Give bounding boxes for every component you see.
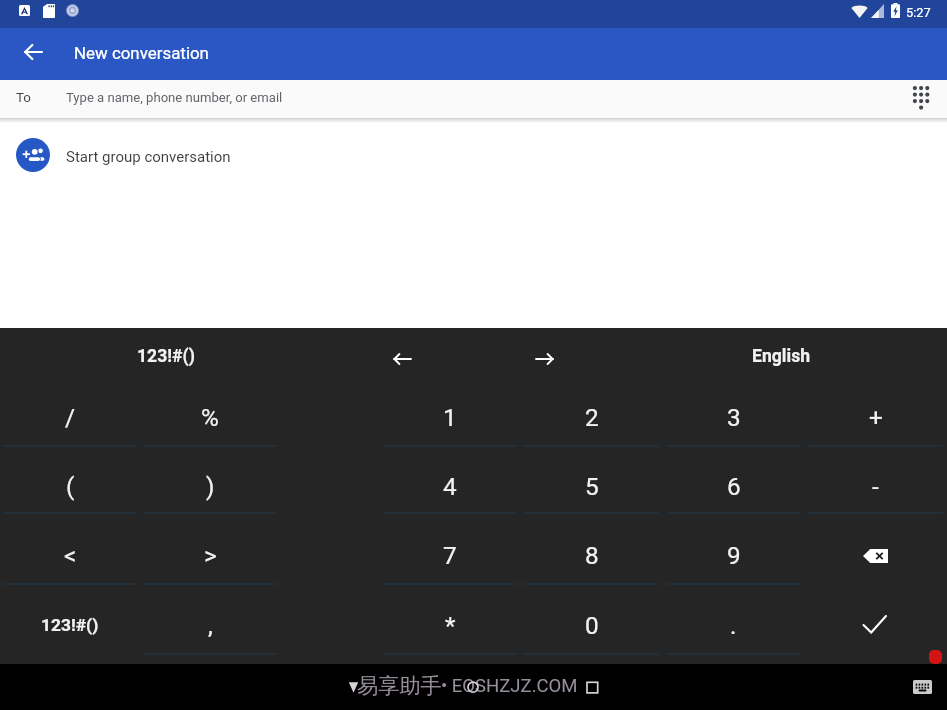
staticText: 8 (585, 541, 599, 569)
button[interactable]: 9 (663, 514, 804, 585)
button[interactable]: % (140, 377, 280, 447)
staticText: 0 (585, 611, 599, 639)
button[interactable]: Switch keyboard (913, 680, 932, 694)
staticText: 123!#() (137, 346, 195, 367)
button[interactable]: 0 (520, 585, 663, 655)
button[interactable]: 3 (663, 377, 804, 447)
button[interactable]: + (804, 377, 947, 447)
staticText: - (872, 472, 879, 500)
button[interactable]: , (140, 585, 280, 655)
button[interactable]: 4 (380, 447, 520, 514)
button[interactable]: * (380, 585, 520, 655)
button[interactable]: 123!#() (0, 328, 280, 375)
staticText: 6 (727, 472, 741, 500)
button[interactable]: Done (804, 585, 947, 655)
button[interactable]: . (663, 585, 804, 655)
staticText: 2 (585, 403, 599, 431)
staticText: 1 (443, 403, 457, 431)
staticText: Start group conversation (66, 148, 231, 166)
staticText: 123!#() (41, 615, 99, 635)
button[interactable]: < (0, 514, 140, 585)
staticText: + (869, 403, 883, 431)
button[interactable]: Delete (804, 514, 947, 585)
staticText: * (445, 611, 456, 639)
other: Done (863, 616, 888, 637)
button[interactable]: 5 (520, 447, 663, 514)
staticText: 3 (727, 403, 741, 431)
button[interactable]: English (707, 328, 855, 375)
staticText: 5:27 (906, 5, 931, 20)
button[interactable]: Move cursor right (526, 341, 562, 377)
button[interactable]: / (0, 377, 140, 447)
other: Delete (863, 549, 888, 563)
button[interactable]: 1 (380, 377, 520, 447)
button[interactable]: Back (341, 674, 366, 699)
staticText: > (204, 541, 217, 569)
staticText: < (64, 541, 77, 569)
staticText: 9 (727, 541, 741, 569)
button[interactable]: ( (0, 447, 140, 514)
staticText: To (16, 90, 31, 106)
button[interactable]: Recents (580, 674, 605, 699)
staticText: , (208, 611, 213, 639)
staticText: • EOSHZJZ.COM (441, 675, 578, 697)
button[interactable]: 123!#() (0, 585, 140, 655)
button[interactable]: 2 (520, 377, 663, 447)
staticText: . (730, 611, 737, 639)
staticText: English (752, 346, 811, 367)
button[interactable]: Start group conversation (0, 126, 947, 184)
button[interactable]: Home (461, 674, 486, 699)
button[interactable]: Dialpad (906, 84, 934, 114)
button[interactable]: Back (13, 32, 53, 72)
staticText: ( (66, 472, 75, 500)
button[interactable]: 7 (380, 514, 520, 585)
staticText: 5 (585, 472, 599, 500)
button[interactable]: - (804, 447, 947, 514)
staticText: New conversation (74, 43, 209, 63)
staticText: / (65, 403, 76, 431)
button[interactable]: > (140, 514, 280, 585)
button[interactable]: Move cursor left (384, 341, 420, 377)
staticText: % (201, 403, 219, 431)
staticText: 4 (443, 472, 457, 500)
staticText: 易享助手 (357, 673, 442, 700)
button[interactable]: 6 (663, 447, 804, 514)
staticText: 7 (443, 541, 457, 569)
button[interactable]: ) (140, 447, 280, 514)
staticText: Type a name, phone number, or email (66, 90, 283, 105)
staticText: ) (206, 472, 215, 500)
button[interactable]: 8 (520, 514, 663, 585)
